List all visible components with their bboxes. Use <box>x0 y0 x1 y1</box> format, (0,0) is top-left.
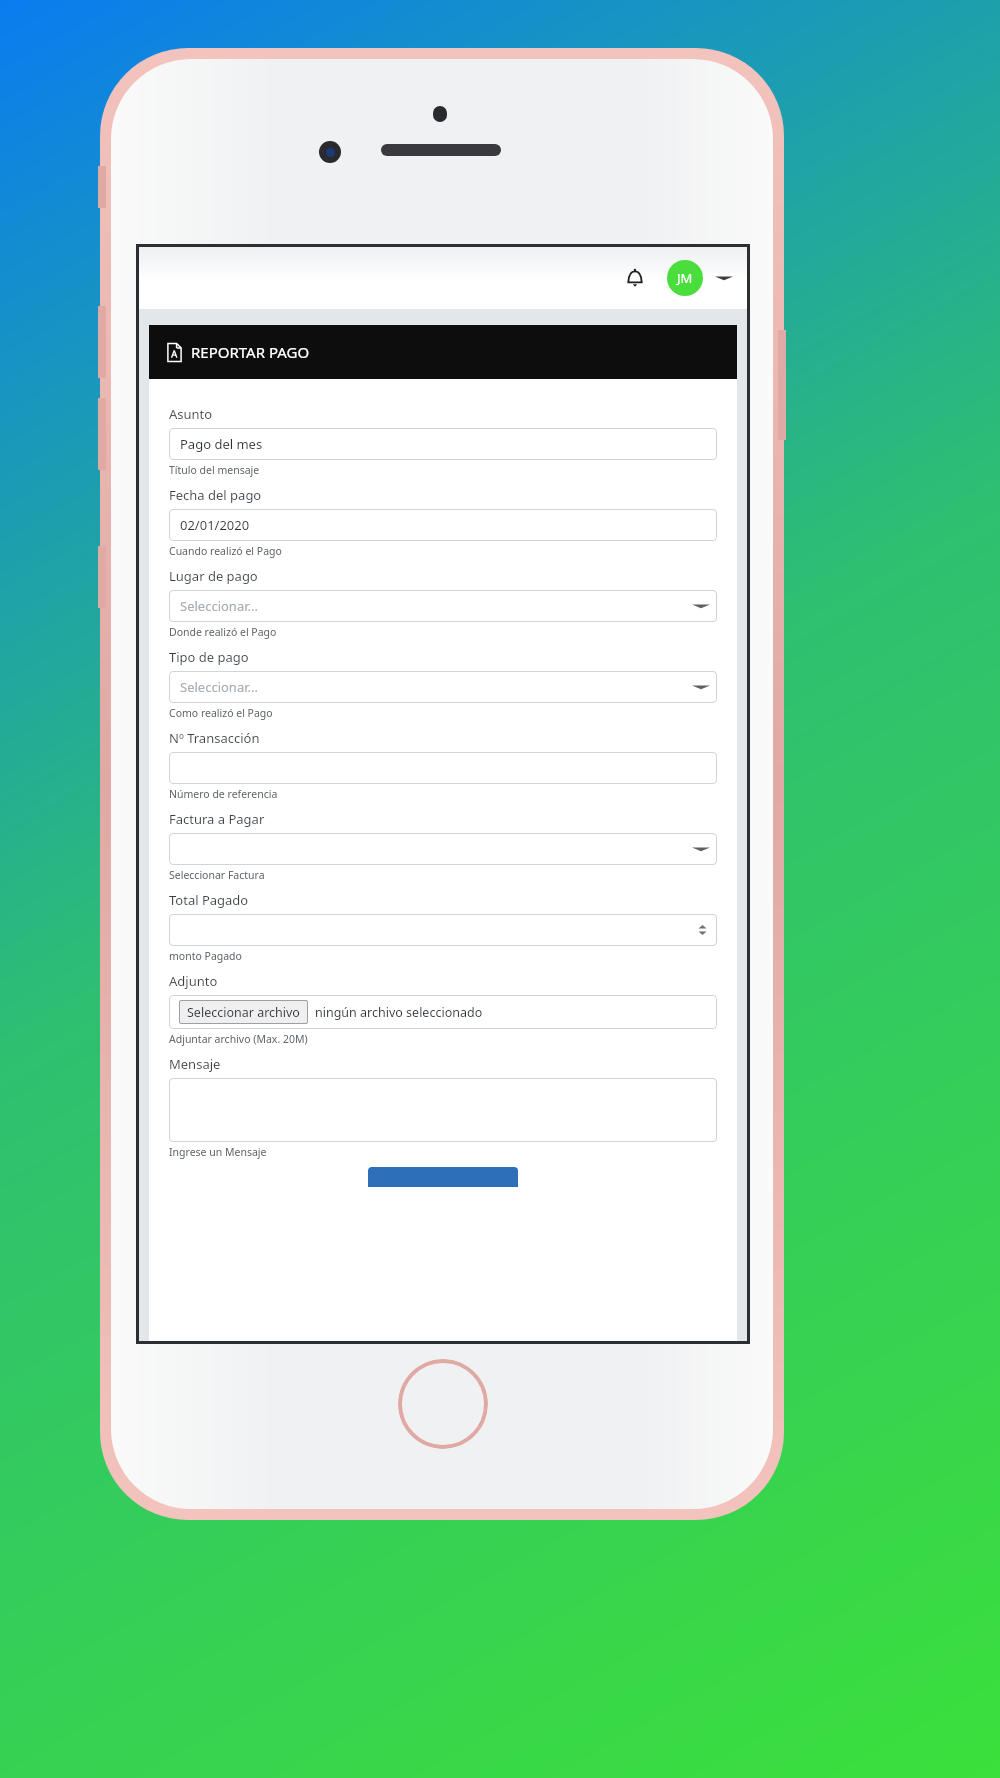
staticText: Tipo de pago <box>169 648 249 666</box>
button[interactable] <box>169 752 717 784</box>
button[interactable]: Seleccionar... <box>169 671 717 703</box>
staticText: Cuando realizó el Pago <box>169 544 282 558</box>
staticText: Factura a Pagar <box>169 810 265 828</box>
staticText: Asunto <box>169 405 213 423</box>
staticText: Pago del mes <box>180 435 263 453</box>
staticText: Fecha del pago <box>169 486 262 504</box>
button[interactable]: JM <box>667 260 703 296</box>
button[interactable]: 02/01/2020 <box>169 509 717 541</box>
staticText: Seleccionar... <box>180 597 258 615</box>
staticText: Adjunto <box>169 972 218 990</box>
button[interactable]: Seleccionar archivo <box>169 995 717 1029</box>
button[interactable]: Menú de usuario <box>711 265 737 291</box>
staticText: Total Pagado <box>169 891 249 909</box>
button[interactable] <box>169 1078 717 1142</box>
button[interactable]: Notificaciones <box>613 256 657 300</box>
button[interactable]: REPORTAR PAGO <box>149 325 737 379</box>
button[interactable] <box>169 833 717 865</box>
staticText: Como realizó el Pago <box>169 706 273 720</box>
staticText: JM <box>677 269 693 287</box>
staticText: Seleccionar archivo <box>187 1004 300 1021</box>
staticText: Título del mensaje <box>169 463 260 477</box>
button[interactable]: Pago del mes <box>169 428 717 460</box>
staticText: Nº Transacción <box>169 729 260 747</box>
button[interactable] <box>368 1167 518 1187</box>
staticText: Donde realizó el Pago <box>169 625 277 639</box>
button[interactable] <box>169 914 717 946</box>
staticText: Seleccionar Factura <box>169 868 265 882</box>
staticText: Ingrese un Mensaje <box>169 1145 267 1159</box>
staticText: Seleccionar... <box>180 678 258 696</box>
staticText: Lugar de pago <box>169 567 258 585</box>
staticText: REPORTAR PAGO <box>191 342 310 362</box>
staticText: Número de referencia <box>169 787 278 801</box>
staticText: Mensaje <box>169 1055 221 1073</box>
staticText: Adjuntar archivo (Max. 20M) <box>169 1032 308 1046</box>
staticText: ningún archivo seleccionado <box>315 1004 483 1021</box>
button[interactable]: Seleccionar... <box>169 590 717 622</box>
staticText: 02/01/2020 <box>180 516 250 534</box>
staticText: monto Pagado <box>169 949 242 963</box>
